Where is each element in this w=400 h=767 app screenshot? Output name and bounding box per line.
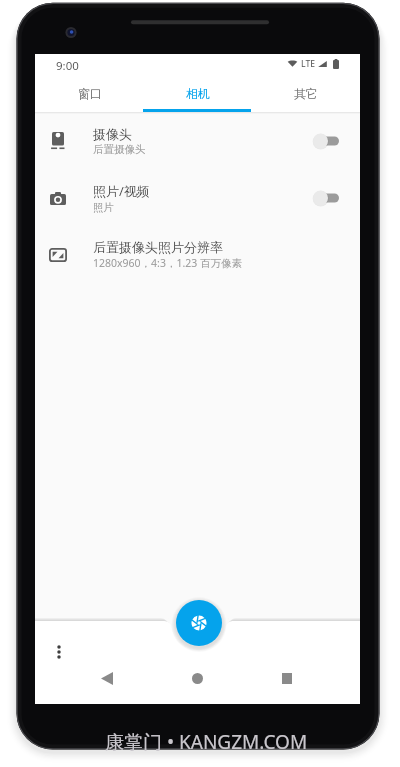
staticText: 摄像头 xyxy=(93,126,132,142)
button[interactable]: Toggle xyxy=(312,189,339,207)
staticText: 相机 xyxy=(186,86,210,101)
staticText: 照片 xyxy=(93,201,114,214)
button[interactable]: 后置摄像头照片分辨率 xyxy=(35,226,360,283)
button[interactable]: Recents xyxy=(263,661,311,695)
button[interactable]: 其它 xyxy=(252,78,360,109)
button[interactable]: Take photo xyxy=(171,595,227,651)
staticText: 窗口 xyxy=(78,86,102,101)
button[interactable]: Toggle xyxy=(312,132,339,150)
staticText: 1280x960，4:3，1.23 百万像素 xyxy=(93,256,242,270)
staticText: 后置摄像头照片分辨率 xyxy=(93,239,223,255)
staticText: LTE xyxy=(301,58,316,70)
button[interactable]: 照片/视频 xyxy=(35,169,360,226)
staticText: 后置摄像头 xyxy=(93,143,146,156)
button[interactable]: 摄像头 xyxy=(35,112,360,169)
button[interactable]: Home xyxy=(173,661,221,695)
staticText: 照片/视频 xyxy=(93,182,150,200)
button[interactable]: Back xyxy=(83,661,131,695)
button[interactable]: 相机 xyxy=(144,78,252,109)
button[interactable]: 窗口 xyxy=(35,78,144,109)
button[interactable]: More options xyxy=(42,635,76,669)
staticText: 康掌门 • KANGZM.COM xyxy=(105,729,308,755)
staticText: 其它 xyxy=(294,86,318,101)
staticText: 9:00 xyxy=(56,58,79,74)
